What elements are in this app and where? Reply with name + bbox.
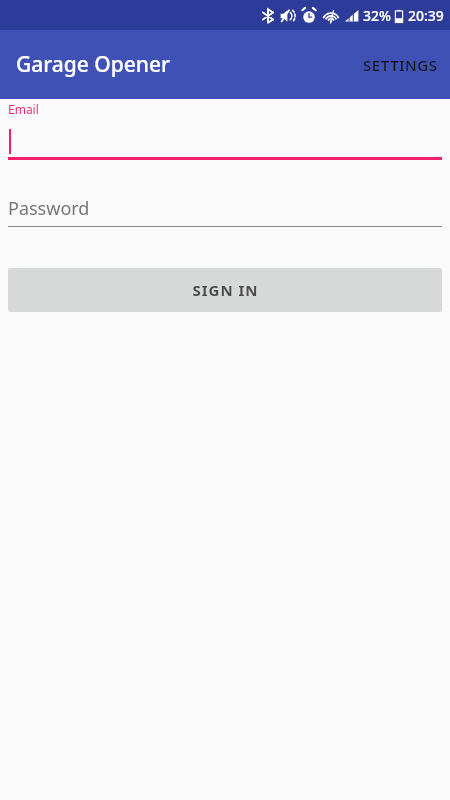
button[interactable]: SETTINGS [351, 41, 450, 89]
staticText: Password [8, 196, 90, 221]
staticText: Email [8, 101, 39, 117]
staticText: SIGN IN [192, 280, 259, 300]
button[interactable]: SIGN IN [8, 268, 442, 312]
staticText: 32% [363, 6, 391, 25]
staticText: Garage Opener [16, 50, 170, 79]
staticText: SETTINGS [363, 55, 438, 75]
staticText: 20:39 [408, 6, 444, 25]
button[interactable]: Password [8, 194, 442, 227]
button[interactable]: Email [8, 101, 442, 160]
